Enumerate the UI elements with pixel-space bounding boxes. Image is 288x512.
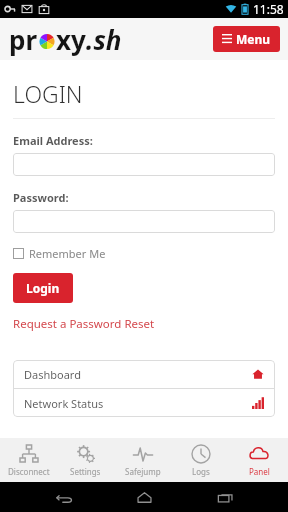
button[interactable]: Network Status [13, 389, 275, 417]
staticText: Settings [70, 466, 101, 477]
button[interactable]: Home [127, 482, 161, 512]
button[interactable]: Panel [230, 438, 288, 482]
staticText: .sh [86, 22, 122, 57]
button[interactable] [13, 153, 275, 176]
button[interactable]: Settings [57, 438, 114, 482]
staticText: pr [9, 22, 38, 57]
button[interactable]: Request a Password Reset [13, 316, 155, 332]
staticText: LOGIN [13, 78, 83, 109]
staticText: xy [56, 22, 86, 57]
button[interactable]: Disconnect [0, 438, 57, 482]
staticText: Login [26, 280, 60, 296]
staticText: Network Status [24, 396, 104, 411]
button[interactable]: Logs [172, 438, 230, 482]
staticText: Request a Password Reset [13, 316, 155, 332]
button[interactable]: Dashboard [13, 360, 275, 388]
button[interactable]: Remember Me [13, 246, 106, 261]
staticText: 11:58 [253, 1, 284, 17]
staticText: Menu [236, 31, 271, 47]
staticText: Dashboard [24, 367, 81, 382]
button[interactable]: Login [13, 273, 73, 303]
staticText: Remember Me [29, 246, 106, 261]
button[interactable]: Menu [213, 26, 280, 52]
button[interactable]: Recents [208, 482, 242, 512]
staticText: Panel [249, 466, 270, 477]
staticText: Logs [192, 466, 210, 477]
button[interactable]: Safejump [114, 438, 172, 482]
button[interactable]: Back [47, 482, 81, 512]
button[interactable] [13, 210, 275, 233]
staticText: Safejump [125, 466, 161, 477]
staticText: Password: [13, 190, 69, 205]
staticText: Disconnect [8, 466, 50, 477]
staticText: Email Address: [13, 133, 93, 148]
